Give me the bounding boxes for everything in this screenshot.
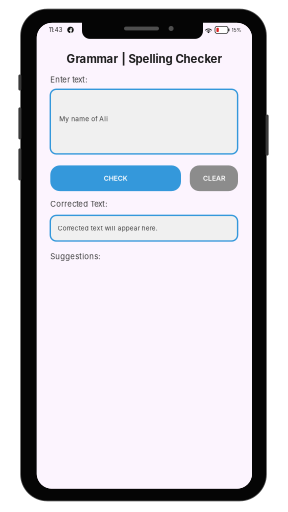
staticText: My name of Ali	[59, 115, 108, 123]
staticText: Suggestions:	[50, 252, 100, 261]
staticText: Grammar | Spelling Checker	[66, 52, 222, 66]
button[interactable]: CLEAR	[190, 165, 238, 191]
staticText: Corrected text will appear here.	[58, 224, 158, 232]
staticText: 15%	[231, 27, 241, 33]
staticText: CLEAR	[203, 174, 225, 182]
staticText: Corrected Text:	[50, 199, 107, 209]
staticText: CHECK	[104, 174, 128, 182]
button[interactable]: CHECK	[50, 165, 181, 191]
staticText: Enter text:	[50, 75, 87, 84]
staticText: 11:43	[49, 26, 63, 33]
